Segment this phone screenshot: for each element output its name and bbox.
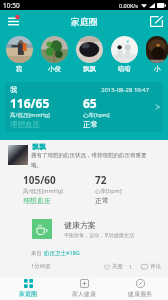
staticText: 家庭圈 [71,16,98,27]
staticText: 理想血压 [23,196,51,205]
staticText: 1分钟前 [31,262,51,270]
staticText: 10:50 [3,1,20,10]
staticText: 暗暗 [118,65,131,73]
button[interactable]: Compose [144,10,168,32]
staticText: 正常 [83,120,98,129]
button[interactable]: 评论 [139,263,163,270]
staticText: 评论 [150,263,161,270]
staticText: 我 [10,85,17,94]
button[interactable]: 我 [5,82,163,132]
staticText: 小 [154,65,161,73]
button[interactable]: 家人健康 [56,277,112,300]
staticText: 心率[bpm] [83,111,110,119]
staticText: 健康方案 [64,220,96,230]
staticText: 0.00K/s [119,2,138,9]
staticText: 家庭圈 [19,290,37,298]
staticText: 我 [16,65,23,73]
staticText: 健康服务 [128,290,152,298]
staticText: 116/65 [10,95,50,111]
staticText: 心率[bpm] [95,187,122,195]
button[interactable]: 关爱 [102,263,135,270]
staticText: 65 [83,95,97,111]
staticText: 平衡饮食，运动，早轻健康生活 [64,232,134,238]
staticText: 105/60 [23,173,56,187]
staticText: 拥有了理想的血压状况，维持理想的血压很重要哦。 [31,152,153,168]
staticText: 72 [95,173,107,187]
staticText: 飘飘 [83,65,96,73]
staticText: 正常 [95,196,109,205]
button[interactable]: 我 [6,36,33,73]
staticText: 2015-08-28 10:47 [101,86,150,94]
staticText: 关爱 [112,263,123,270]
staticText: 理想血压 [10,120,40,129]
button[interactable]: 健康方案 [32,219,134,239]
button[interactable]: 健康服务 [112,277,168,300]
button[interactable]: 家庭圈 [0,277,56,300]
staticText: 1 [129,263,133,270]
button[interactable]: 小俊 [41,36,68,73]
button[interactable]: 暗暗 [111,36,138,73]
staticText: 飘飘 [32,142,46,151]
staticText: 来自 [31,249,44,257]
button[interactable]: 飘飘 [0,140,168,277]
button[interactable]: 飘飘 [76,36,103,73]
staticText: 家人健康 [72,290,96,298]
staticText: 血压卫士A18G [44,249,80,257]
button[interactable]: 小 [146,36,168,73]
staticText: 高/低压[mmHg] [23,187,63,195]
button[interactable]: Menu [0,10,26,32]
staticText: 小俊 [48,65,61,73]
staticText: 高/低压[mmHg] [10,111,50,119]
